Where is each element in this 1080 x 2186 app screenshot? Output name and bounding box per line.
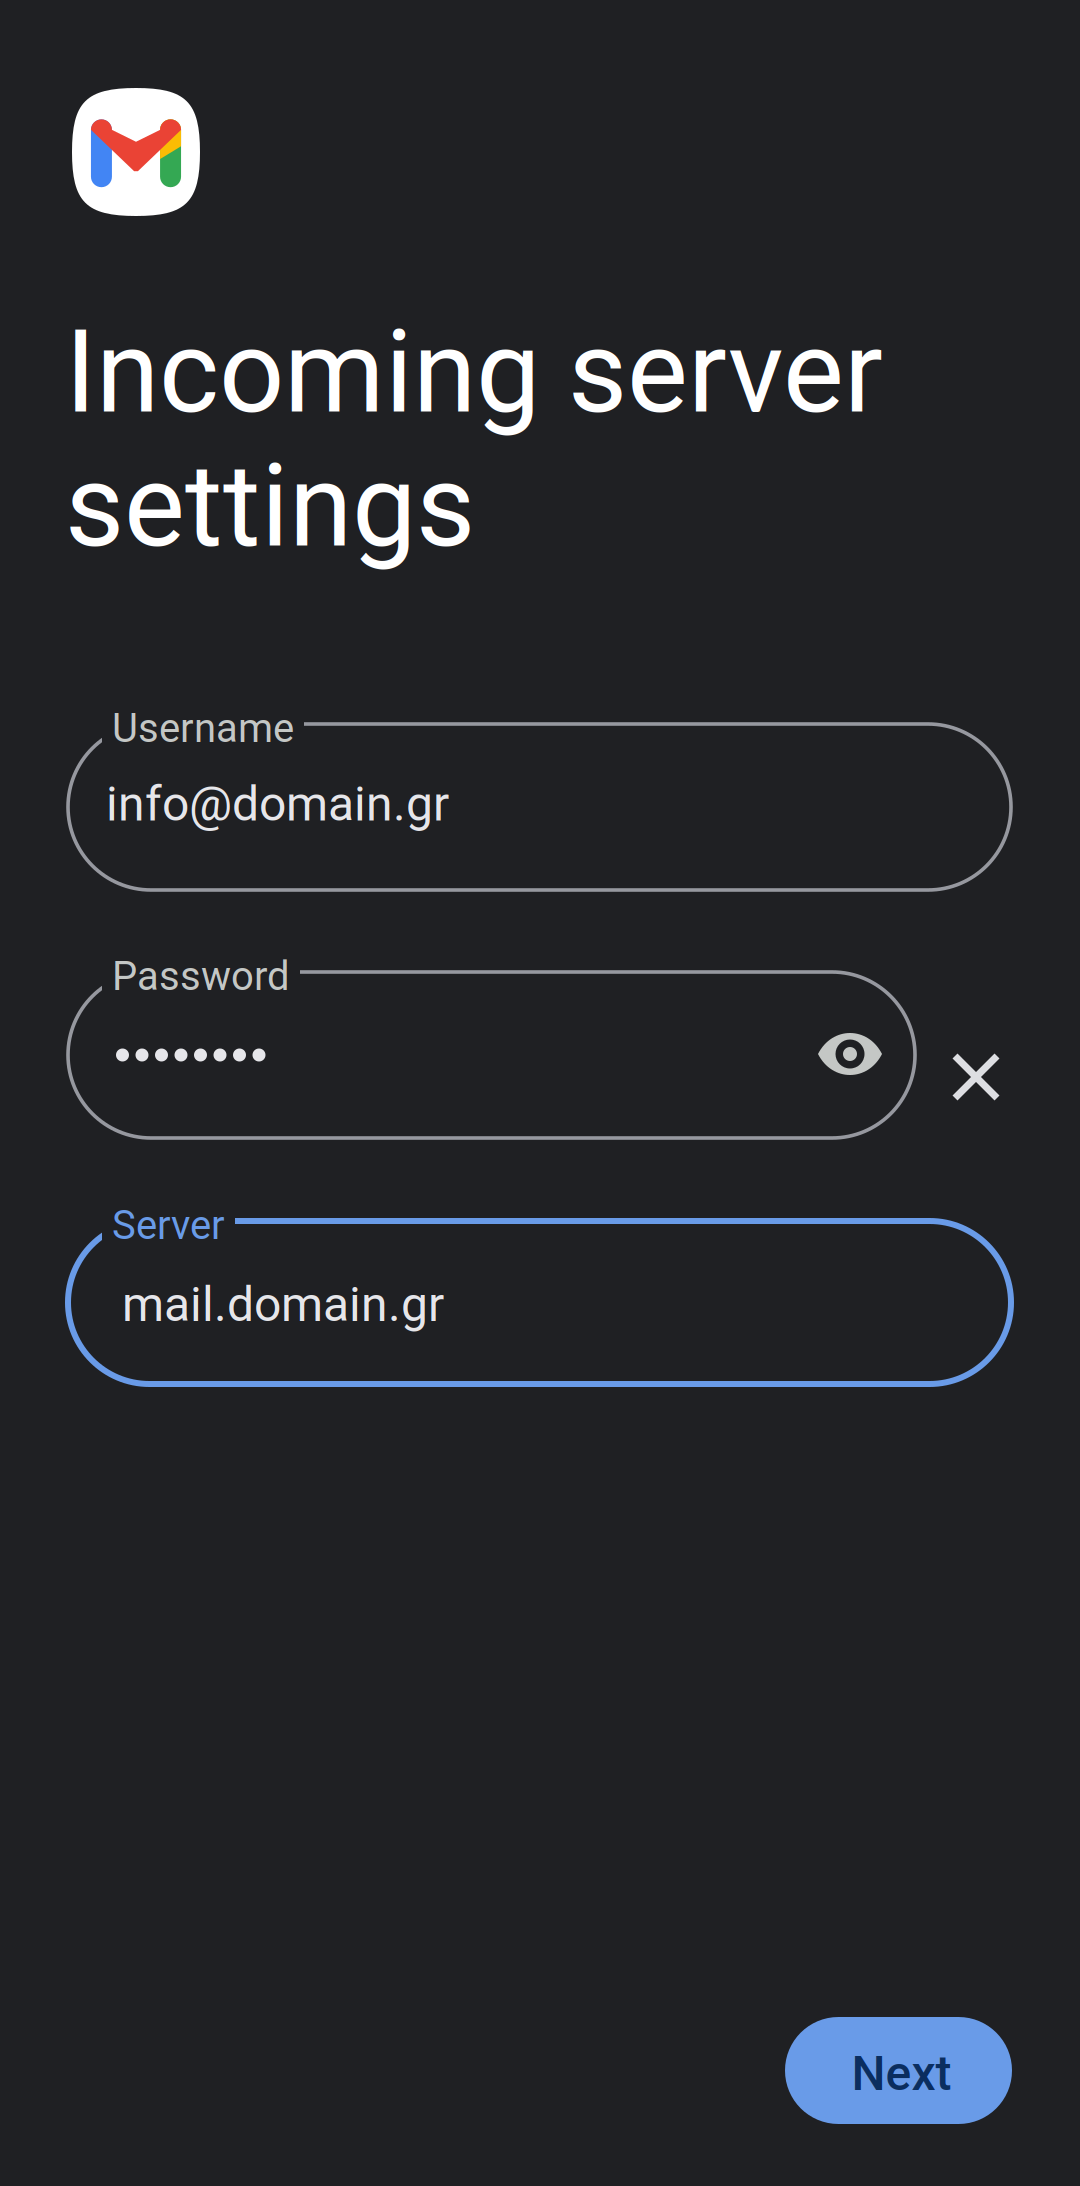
staticText: settings [65,439,475,573]
button[interactable]: Server [68,1221,1011,1384]
button[interactable]: Show password [799,1013,901,1095]
staticText: Next [851,2045,951,2102]
staticText: info@domain.gr [106,776,449,832]
button[interactable]: Password [68,972,915,1138]
button[interactable]: Username [68,724,1011,890]
button[interactable]: Clear password [936,1037,1016,1117]
staticText: mail.domain.gr [122,1276,444,1333]
staticText: Username [112,705,294,752]
staticText: Incoming server [65,305,883,439]
staticText: Password [112,953,290,1000]
staticText: Server [112,1202,225,1249]
button[interactable]: Next [785,2017,1012,2124]
